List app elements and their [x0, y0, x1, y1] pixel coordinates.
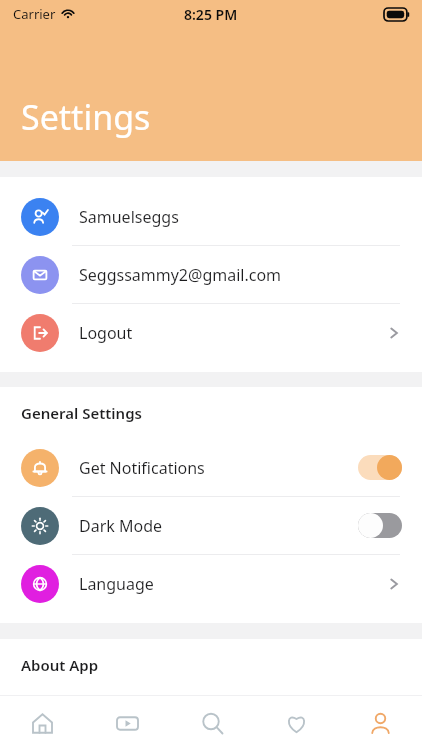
button[interactable] — [358, 513, 402, 538]
staticText: Get Notifications — [79, 457, 358, 479]
button[interactable]: Language — [0, 555, 422, 612]
staticText: Carrier — [13, 5, 56, 23]
button[interactable]: Logout — [0, 304, 422, 361]
staticText: Logout — [79, 322, 386, 344]
staticText: Samuelseggs — [79, 206, 402, 228]
button[interactable]: Search — [170, 696, 254, 750]
button[interactable]: Profile — [338, 696, 422, 750]
staticText: Language — [79, 573, 386, 595]
staticText: Dark Mode — [79, 515, 358, 537]
button[interactable] — [358, 455, 402, 480]
staticText: Seggssammy2@gmail.com — [79, 264, 402, 286]
staticText: About App — [21, 655, 99, 675]
button[interactable]: Favorites — [254, 696, 338, 750]
staticText: Settings — [21, 94, 151, 140]
staticText: General Settings — [21, 403, 142, 423]
button[interactable]: Home — [0, 696, 85, 750]
staticText: 8:25 PM — [184, 5, 238, 24]
button[interactable]: Samuelseggs — [0, 188, 422, 245]
button[interactable]: Videos — [85, 696, 170, 750]
button[interactable]: Get Notifications — [0, 439, 422, 496]
button[interactable]: Dark Mode — [0, 497, 422, 554]
button[interactable]: Seggssammy2@gmail.com — [0, 246, 422, 303]
